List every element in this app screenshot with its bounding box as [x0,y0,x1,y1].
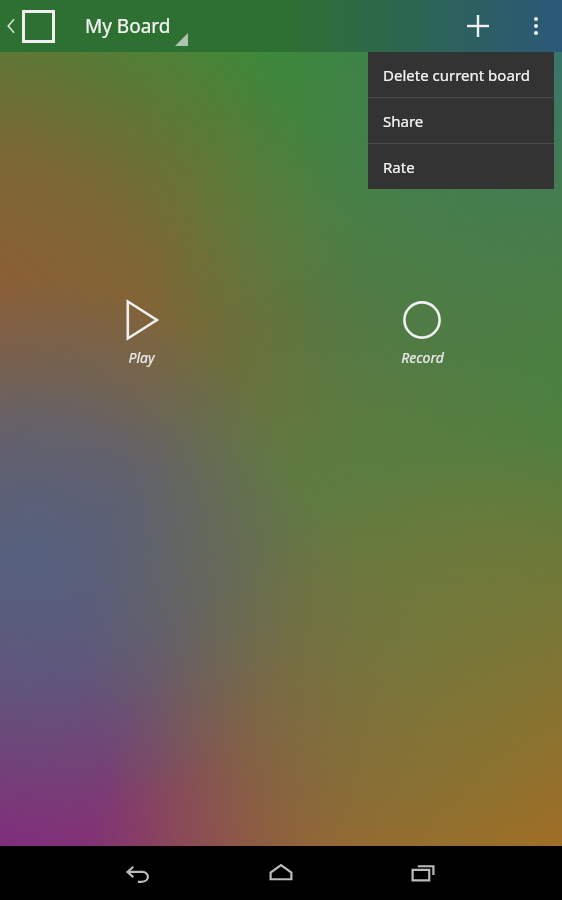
button[interactable]: Home [250,846,312,900]
button[interactable]: Play [97,290,185,375]
button[interactable]: Recent apps [392,846,454,900]
button[interactable]: Share [368,98,554,143]
button[interactable]: Delete current board [368,52,554,97]
button[interactable]: Record [378,290,466,375]
button[interactable]: Add board [452,0,504,52]
staticText: Delete current board [383,65,530,85]
button[interactable]: Back [108,846,170,900]
button[interactable]: More options [510,0,562,52]
button[interactable]: Navigate up [0,0,183,52]
staticText: Rate [383,157,415,177]
other: Navigate up [4,14,18,38]
staticText: My Board [85,13,171,39]
staticText: Share [383,111,424,131]
button[interactable]: Rate [368,144,554,189]
staticText: Play [128,348,155,367]
staticText: Record [401,348,444,367]
